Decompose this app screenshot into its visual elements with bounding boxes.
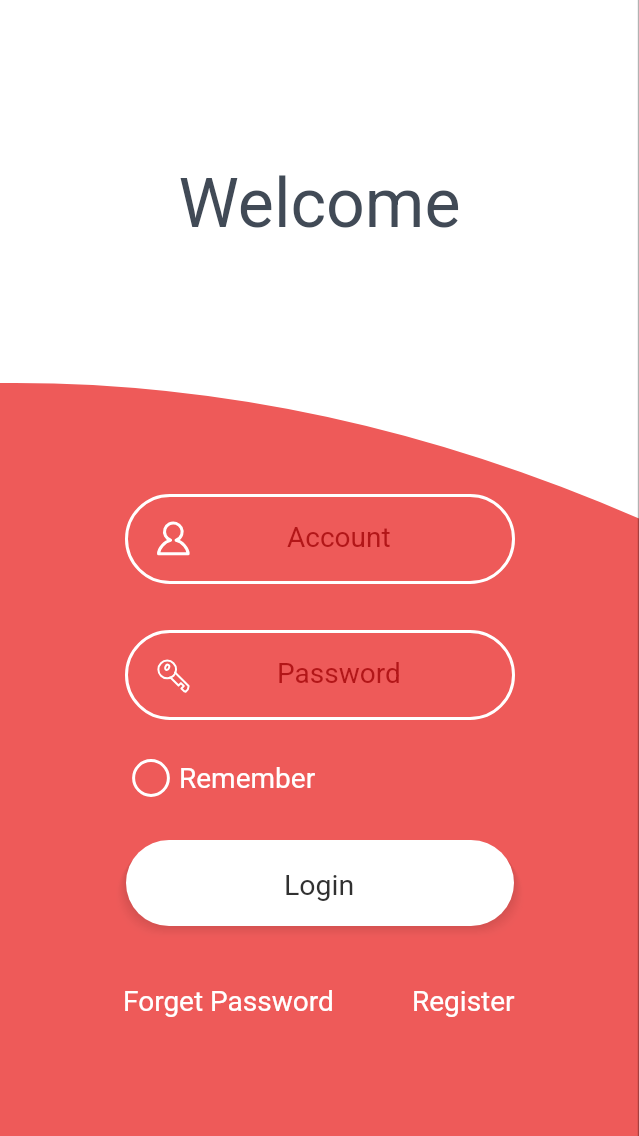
- staticText: Password: [277, 657, 401, 690]
- button[interactable]: Register: [412, 985, 515, 1018]
- button[interactable]: Account: [125, 494, 515, 584]
- button[interactable]: Login: [126, 840, 514, 926]
- staticText: Login: [284, 869, 355, 902]
- staticText: Remember: [179, 762, 316, 795]
- staticText: Welcome: [0, 164, 639, 244]
- staticText: Account: [287, 521, 391, 554]
- other: Remember me checkbox: [131, 758, 171, 798]
- button[interactable]: Forget Password: [123, 985, 334, 1018]
- button[interactable]: Password: [125, 630, 515, 720]
- button[interactable]: Remember me checkbox: [131, 756, 316, 800]
